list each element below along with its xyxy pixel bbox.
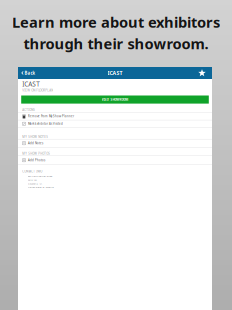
button[interactable]: Remove From My Show Planner	[18, 112, 212, 120]
staticText: VIEW ON FLOORPLAN	[22, 88, 53, 92]
staticText: Add Photos	[28, 158, 45, 162]
staticText: VISIT SHOWROOM	[101, 98, 128, 102]
button[interactable]: VISIT SHOWROOM	[21, 95, 209, 104]
staticText: through their showroom.	[23, 33, 208, 53]
staticText: CONTACT INFO	[22, 169, 42, 173]
staticText: Mark Exhibitor As Visited	[28, 122, 63, 126]
staticText: United States of America	[27, 186, 53, 189]
staticText: Back	[24, 70, 35, 76]
staticText: ICAST	[22, 79, 40, 88]
staticText: Learn more about exhibitors	[12, 12, 220, 32]
button[interactable]: Add Photos	[18, 156, 212, 164]
button[interactable]: Favourite	[192, 67, 212, 79]
staticText: Remove From My Show Planner	[28, 114, 74, 118]
staticText: ACTIONS	[22, 108, 35, 112]
staticText: MY SHOW NOTES	[22, 135, 48, 139]
button[interactable]: Mark Exhibitor As Visited	[18, 120, 212, 127]
staticText: MY SHOW PHOTOS	[22, 152, 50, 155]
staticText: 500 North Fairfax Street	[27, 175, 52, 178]
button[interactable]: Back	[18, 67, 52, 79]
staticText: ICAST	[107, 69, 122, 77]
button[interactable]: Add Notes	[18, 139, 212, 147]
staticText: Suite 100	[27, 178, 36, 181]
staticText: Add Notes	[28, 141, 43, 145]
staticText: Alexandria, VA	[27, 182, 41, 185]
